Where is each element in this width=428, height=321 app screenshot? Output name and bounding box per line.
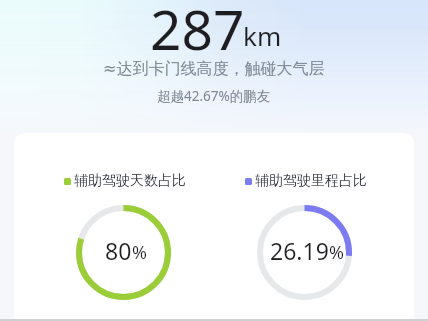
button[interactable]: 辅助驾驶里程占比 [208, 133, 400, 300]
staticText: 26.19 [270, 235, 329, 266]
staticText: 287 [150, 0, 245, 66]
staticText: 80 [105, 235, 132, 266]
staticText: % [132, 240, 147, 265]
staticText: km [243, 18, 282, 53]
staticText: 辅助驾驶天数占比 [74, 172, 186, 190]
staticText: 超越42.67%的鹏友 [157, 87, 271, 105]
staticText: ≈达到卡门线高度，触碰大气层 [103, 59, 325, 79]
staticText: % [329, 240, 344, 265]
staticText: 辅助驾驶里程占比 [255, 172, 367, 190]
button[interactable]: 辅助驾驶天数占比 [27, 133, 219, 300]
